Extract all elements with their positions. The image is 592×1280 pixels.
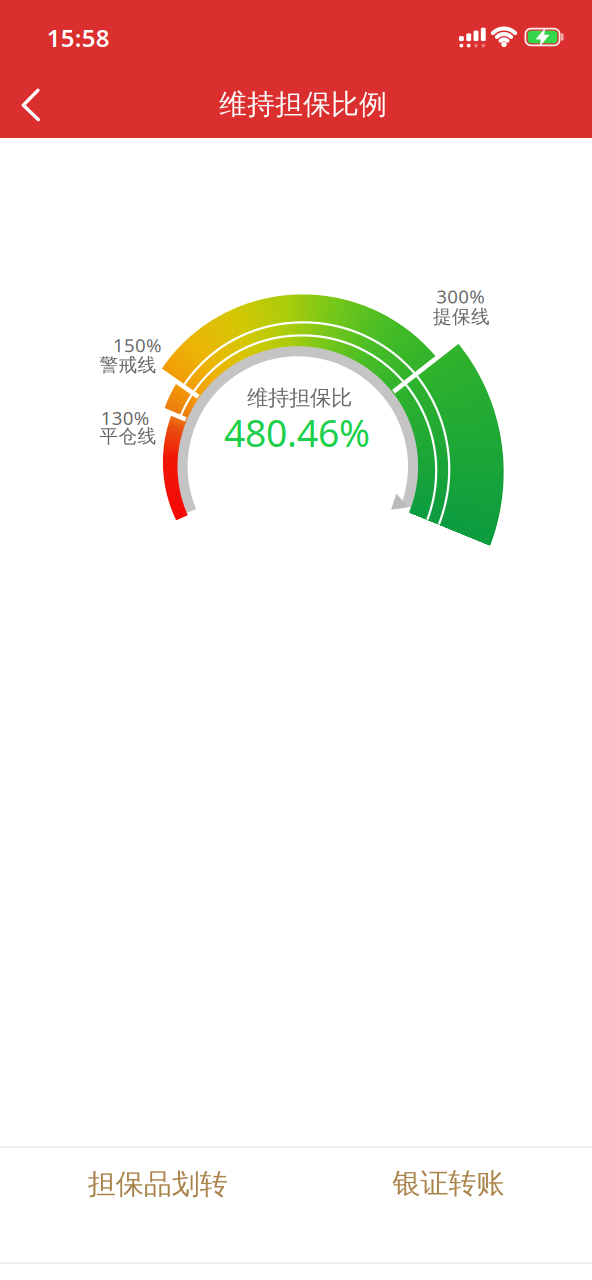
button[interactable] [1,75,61,135]
staticText: 担保品划转 [88,1167,228,1201]
button[interactable]: 银证转账 [338,1138,558,1228]
staticText: 130% [101,405,150,430]
staticText: 维持担保比 [247,385,352,411]
staticText: 150% [113,333,162,357]
staticText: 警戒线 [99,353,156,376]
staticText: 15:58 [47,22,110,54]
staticText: 300% [436,284,485,309]
staticText: 提保线 [433,305,490,328]
staticText: 维持担保比例 [219,87,387,122]
staticText: 平仓线 [99,425,156,448]
staticText: 480.46% [224,408,370,457]
button[interactable]: 担保品划转 [38,1139,278,1229]
staticText: 银证转账 [392,1166,504,1201]
